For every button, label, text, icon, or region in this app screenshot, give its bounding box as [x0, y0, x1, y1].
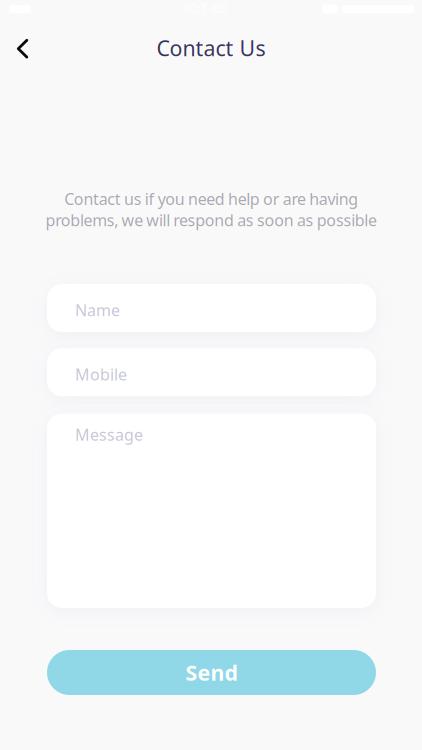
staticText: Contact Us [156, 34, 265, 62]
staticText: Contact us if you need help or are havin… [45, 188, 377, 231]
staticText: Mobile [75, 364, 127, 385]
button[interactable]: Name [47, 284, 376, 332]
button[interactable]: Send [47, 650, 376, 695]
staticText: Send [185, 658, 237, 687]
staticText: Name [75, 299, 120, 321]
button[interactable]: Message [47, 413, 376, 608]
staticText: Message [75, 424, 143, 445]
button[interactable]: Mobile [47, 348, 376, 396]
button[interactable]: Back [11, 38, 33, 60]
